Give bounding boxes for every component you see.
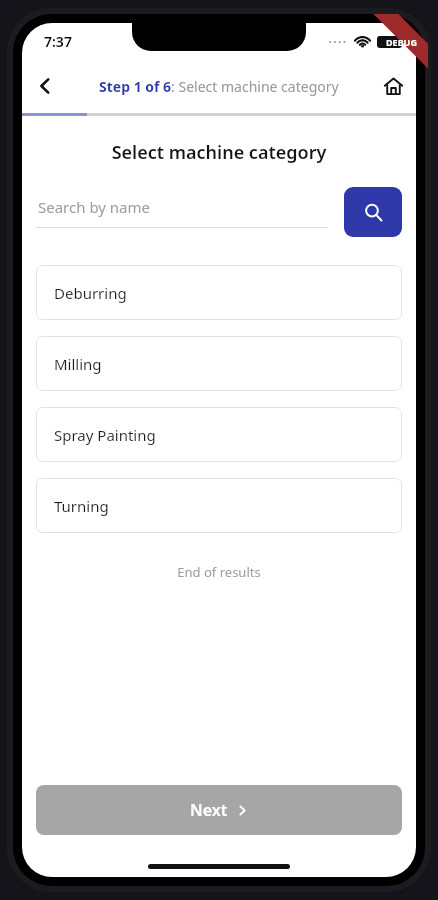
staticText: Search by name [38, 197, 151, 217]
button[interactable]: Next [36, 785, 402, 835]
staticText: Turning [54, 496, 109, 516]
button[interactable]: Home [370, 63, 416, 109]
button[interactable]: Spray Painting [36, 407, 402, 462]
button[interactable]: Turning [36, 478, 402, 533]
staticText: Next [190, 799, 228, 821]
staticText: Milling [54, 354, 102, 374]
button[interactable]: Back [22, 63, 68, 109]
button[interactable]: Milling [36, 336, 402, 391]
staticText: Select machine category [36, 140, 402, 165]
staticText: DEBUG [386, 36, 417, 48]
staticText: Deburring [54, 283, 127, 303]
staticText: Step 1 of 6: Select machine category [99, 77, 339, 96]
button[interactable]: Search by name [36, 197, 328, 228]
staticText: 7:37 [44, 32, 72, 51]
button[interactable]: Deburring [36, 265, 402, 320]
staticText: End of results [36, 563, 402, 581]
staticText: Spray Painting [54, 425, 156, 445]
button[interactable]: Search [344, 187, 402, 237]
